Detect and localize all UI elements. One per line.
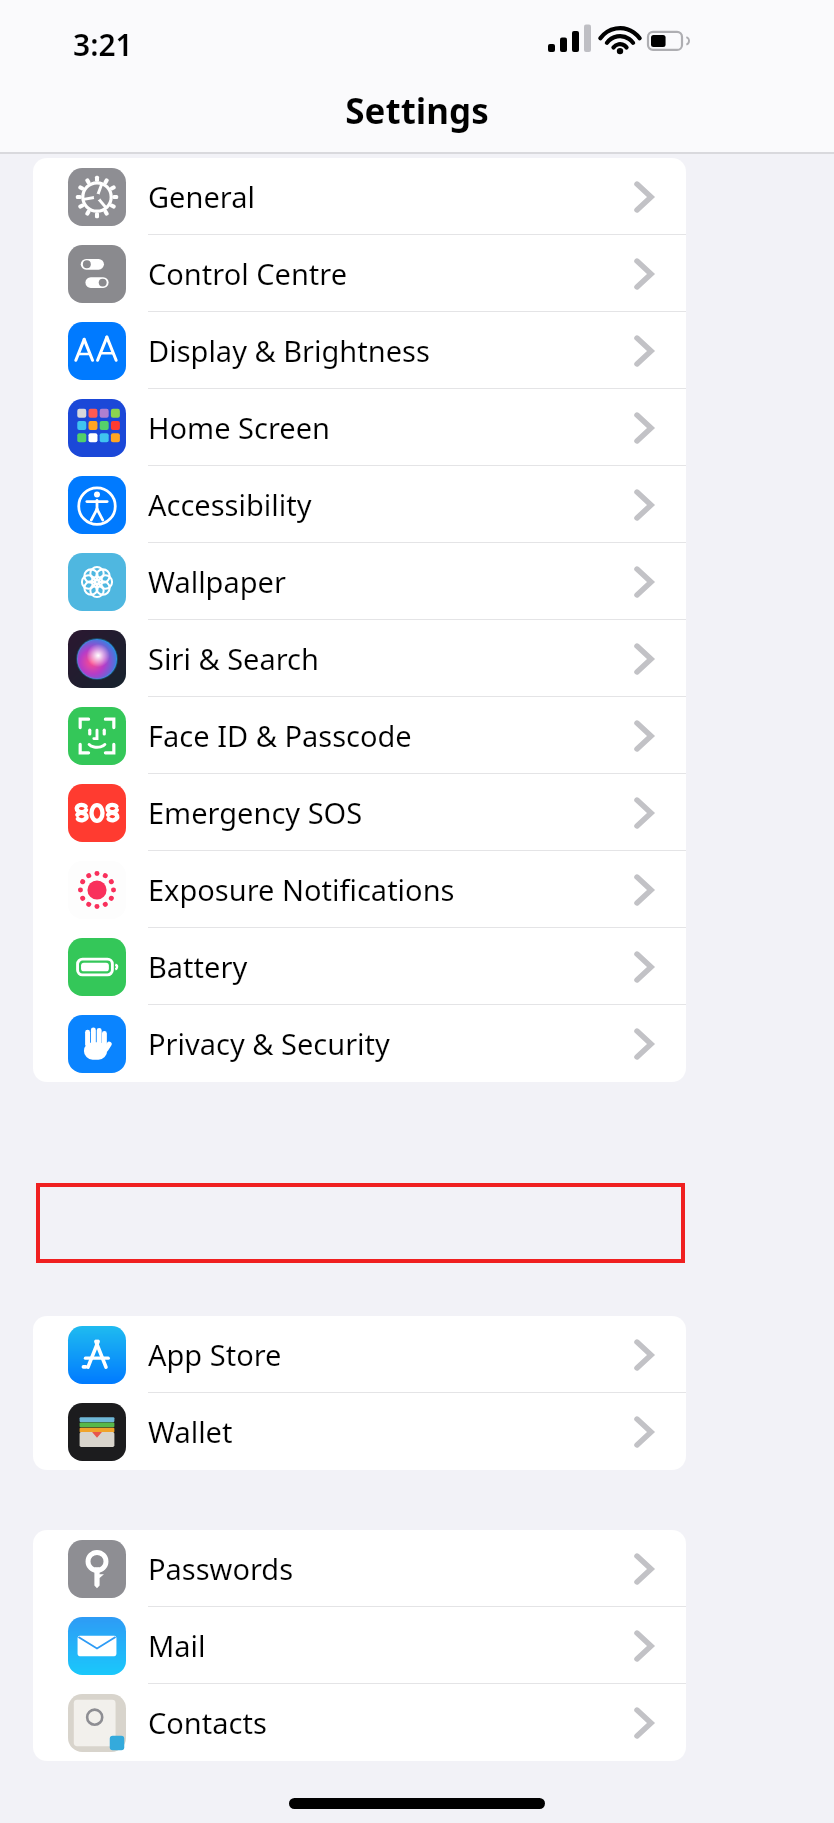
button[interactable]: Control Centre bbox=[33, 235, 686, 312]
button[interactable]: Wallpaper bbox=[33, 543, 686, 620]
staticText: Wallpaper bbox=[148, 562, 286, 601]
button[interactable]: Battery bbox=[33, 928, 686, 1005]
staticText: 3:21 bbox=[73, 24, 133, 65]
staticText: Exposure Notifications bbox=[148, 870, 455, 909]
button[interactable]: Exposure Notifications bbox=[33, 851, 686, 928]
staticText: Privacy & Security bbox=[148, 1024, 390, 1063]
staticText: Display & Brightness bbox=[148, 331, 430, 370]
staticText: Control Centre bbox=[148, 254, 348, 293]
staticText: Home Screen bbox=[148, 408, 330, 447]
staticText: Contacts bbox=[148, 1703, 267, 1742]
button[interactable]: Siri & Search bbox=[33, 620, 686, 697]
staticText: Battery bbox=[148, 947, 248, 986]
button[interactable]: Accessibility bbox=[33, 466, 686, 543]
staticText: Passwords bbox=[148, 1549, 294, 1588]
button[interactable]: General bbox=[33, 158, 686, 235]
button[interactable]: Display & Brightness bbox=[33, 312, 686, 389]
staticText: Face ID & Passcode bbox=[148, 716, 412, 755]
staticText: Settings bbox=[345, 87, 489, 135]
button[interactable]: Home Screen bbox=[33, 389, 686, 466]
staticText: Accessibility bbox=[148, 485, 312, 524]
button[interactable]: App Store bbox=[33, 1316, 686, 1393]
button[interactable]: Passwords bbox=[33, 1530, 686, 1607]
button[interactable]: Contacts bbox=[33, 1684, 686, 1761]
button[interactable]: Privacy & Security bbox=[33, 1005, 686, 1082]
staticText: Mail bbox=[148, 1626, 206, 1665]
staticText: Emergency SOS bbox=[148, 793, 363, 832]
button[interactable]: Wallet bbox=[33, 1393, 686, 1470]
staticText: Siri & Search bbox=[148, 639, 319, 678]
button[interactable]: Mail bbox=[33, 1607, 686, 1684]
button[interactable]: Emergency SOS bbox=[33, 774, 686, 851]
button[interactable]: Face ID & Passcode bbox=[33, 697, 686, 774]
staticText: Wallet bbox=[148, 1412, 233, 1451]
staticText: App Store bbox=[148, 1335, 282, 1374]
staticText: General bbox=[148, 177, 255, 216]
